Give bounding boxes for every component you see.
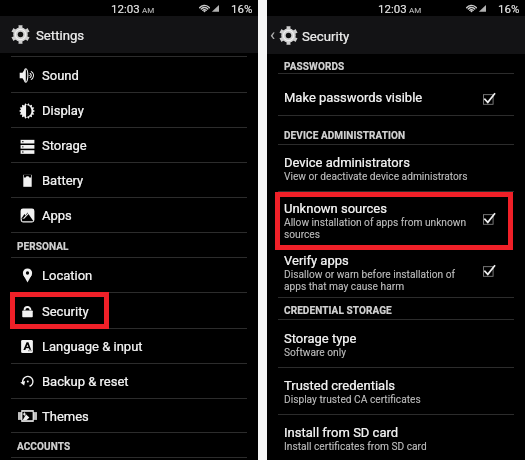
staticText: Display trusted CA certificates	[284, 394, 421, 406]
staticText: Make passwords visible	[284, 90, 423, 105]
staticText: Themes	[42, 409, 89, 424]
staticText: Display	[42, 103, 84, 118]
button[interactable]: Location	[0, 258, 258, 293]
button[interactable]	[267, 145, 525, 191]
staticText: ACCOUNTS	[17, 441, 71, 453]
button[interactable]: Display	[0, 93, 258, 128]
button[interactable]: Unknown sources toggle	[478, 208, 500, 230]
staticText: Security	[302, 29, 350, 44]
staticText: Install certificates from SD card	[284, 441, 427, 453]
button[interactable]: Security	[0, 293, 258, 329]
staticText: PERSONAL	[17, 241, 69, 253]
button[interactable]	[267, 192, 525, 243]
staticText: 16%	[231, 2, 253, 15]
button[interactable]: Backup & reset	[0, 364, 258, 399]
staticText: AM	[142, 6, 155, 15]
button[interactable]: Settings	[0, 16, 258, 53]
staticText: Settings	[36, 28, 85, 43]
button[interactable]: Storage	[0, 128, 258, 163]
button[interactable]: Language & input	[0, 329, 258, 364]
staticText: PASSWORDS	[284, 61, 345, 73]
staticText: ‹	[270, 24, 276, 44]
staticText: Backup & reset	[42, 374, 129, 389]
staticText: Sound	[42, 68, 79, 83]
staticText: Storage	[42, 138, 87, 153]
staticText: 16%	[498, 2, 520, 15]
staticText: Software only	[284, 347, 346, 359]
button[interactable]: Verify apps toggle	[478, 260, 500, 282]
staticText: 12:03	[111, 2, 140, 15]
button[interactable]: Security	[279, 16, 362, 54]
staticText: Apps	[42, 208, 72, 223]
staticText: 12:03	[378, 2, 407, 15]
button[interactable]	[267, 368, 525, 414]
staticText: Storage type	[284, 331, 357, 346]
staticText: Battery	[42, 173, 84, 188]
button[interactable]	[267, 415, 525, 460]
staticText: Disallow or warn before installation of …	[284, 269, 456, 293]
button[interactable]: Make passwords visible toggle	[478, 88, 500, 110]
button[interactable]: Battery	[0, 163, 258, 198]
staticText: Trusted credentials	[284, 378, 396, 393]
staticText: Device administrators	[284, 155, 410, 170]
button[interactable]	[267, 74, 525, 115]
staticText: Location	[42, 268, 93, 283]
staticText: Unknown sources	[284, 201, 387, 216]
staticText: Install from SD card	[284, 425, 399, 440]
staticText: CREDENTIAL STORAGE	[284, 305, 392, 317]
button[interactable]: Sound	[0, 57, 258, 93]
button[interactable]: Apps	[0, 198, 258, 233]
staticText: AM	[409, 6, 422, 15]
button[interactable]	[267, 243, 525, 297]
staticText: Security	[42, 304, 89, 319]
staticText: DEVICE ADMINISTRATION	[284, 130, 406, 142]
button[interactable]: Navigate up	[267, 16, 285, 54]
staticText: Verify apps	[284, 253, 349, 268]
staticText: Allow installation of apps from unknown …	[284, 217, 467, 241]
staticText: View or deactivate device administrators	[284, 171, 468, 183]
button[interactable]	[267, 320, 525, 367]
staticText: Language & input	[42, 339, 143, 354]
button[interactable]: Themes	[0, 399, 258, 433]
